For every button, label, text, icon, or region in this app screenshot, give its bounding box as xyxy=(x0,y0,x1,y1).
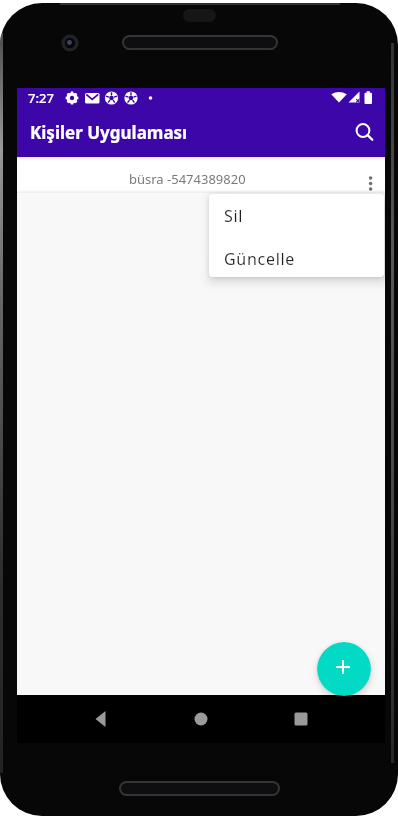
staticText: Güncelle xyxy=(224,248,296,270)
button[interactable] xyxy=(277,695,325,743)
staticText: büsra -5474389820 xyxy=(129,170,246,188)
button[interactable] xyxy=(353,157,385,193)
button[interactable] xyxy=(177,695,225,743)
button[interactable] xyxy=(77,695,125,743)
staticText: Kişiler Uygulaması xyxy=(30,121,188,144)
staticText: Sil xyxy=(224,205,244,227)
button[interactable]: Güncelle xyxy=(209,235,384,277)
button[interactable] xyxy=(317,642,371,696)
button[interactable] xyxy=(337,109,385,157)
staticText: 7:27 xyxy=(28,89,54,107)
button[interactable]: Sil xyxy=(209,194,384,235)
button[interactable]: büsra -5474389820 xyxy=(17,157,385,193)
